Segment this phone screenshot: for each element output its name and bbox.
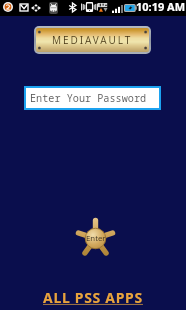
staticText: 10:19 AM [136, 0, 186, 14]
staticText: MEDIAVAULT [52, 33, 133, 47]
staticText: ALL PSS APPS [43, 288, 143, 307]
button[interactable]: Enter [75, 218, 116, 259]
staticText: Enter [86, 233, 106, 244]
button[interactable]: Enter Your Password [26, 88, 159, 108]
button[interactable]: MEDIAVAULT [36, 28, 149, 52]
button[interactable]: ALL PSS APPS [41, 288, 145, 307]
staticText: Enter Your Password [30, 91, 147, 105]
